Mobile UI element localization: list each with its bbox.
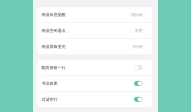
staticText: 翻页保留一行	[41, 65, 65, 70]
staticText: 30分钟	[130, 12, 142, 17]
button[interactable]: 阅读空闲退出	[37, 23, 152, 38]
button[interactable]: 过滤空行	[37, 92, 152, 107]
staticText: 5分钟	[132, 44, 142, 49]
staticText: 阅读屏幕变亮	[41, 44, 65, 49]
staticText: 阅读空闲退出	[41, 28, 65, 33]
button[interactable]: 翻页保留一行	[37, 60, 152, 75]
staticText: 书法效果	[41, 81, 57, 86]
staticText: 过滤空行	[41, 97, 57, 102]
button[interactable]: 阅读屏幕变亮	[37, 39, 152, 54]
staticText: 阅读休息提醒	[41, 12, 65, 17]
button[interactable]: 书法效果	[37, 76, 152, 91]
button[interactable]: 阅读休息提醒	[37, 7, 152, 22]
staticText: 关闭	[134, 28, 142, 33]
